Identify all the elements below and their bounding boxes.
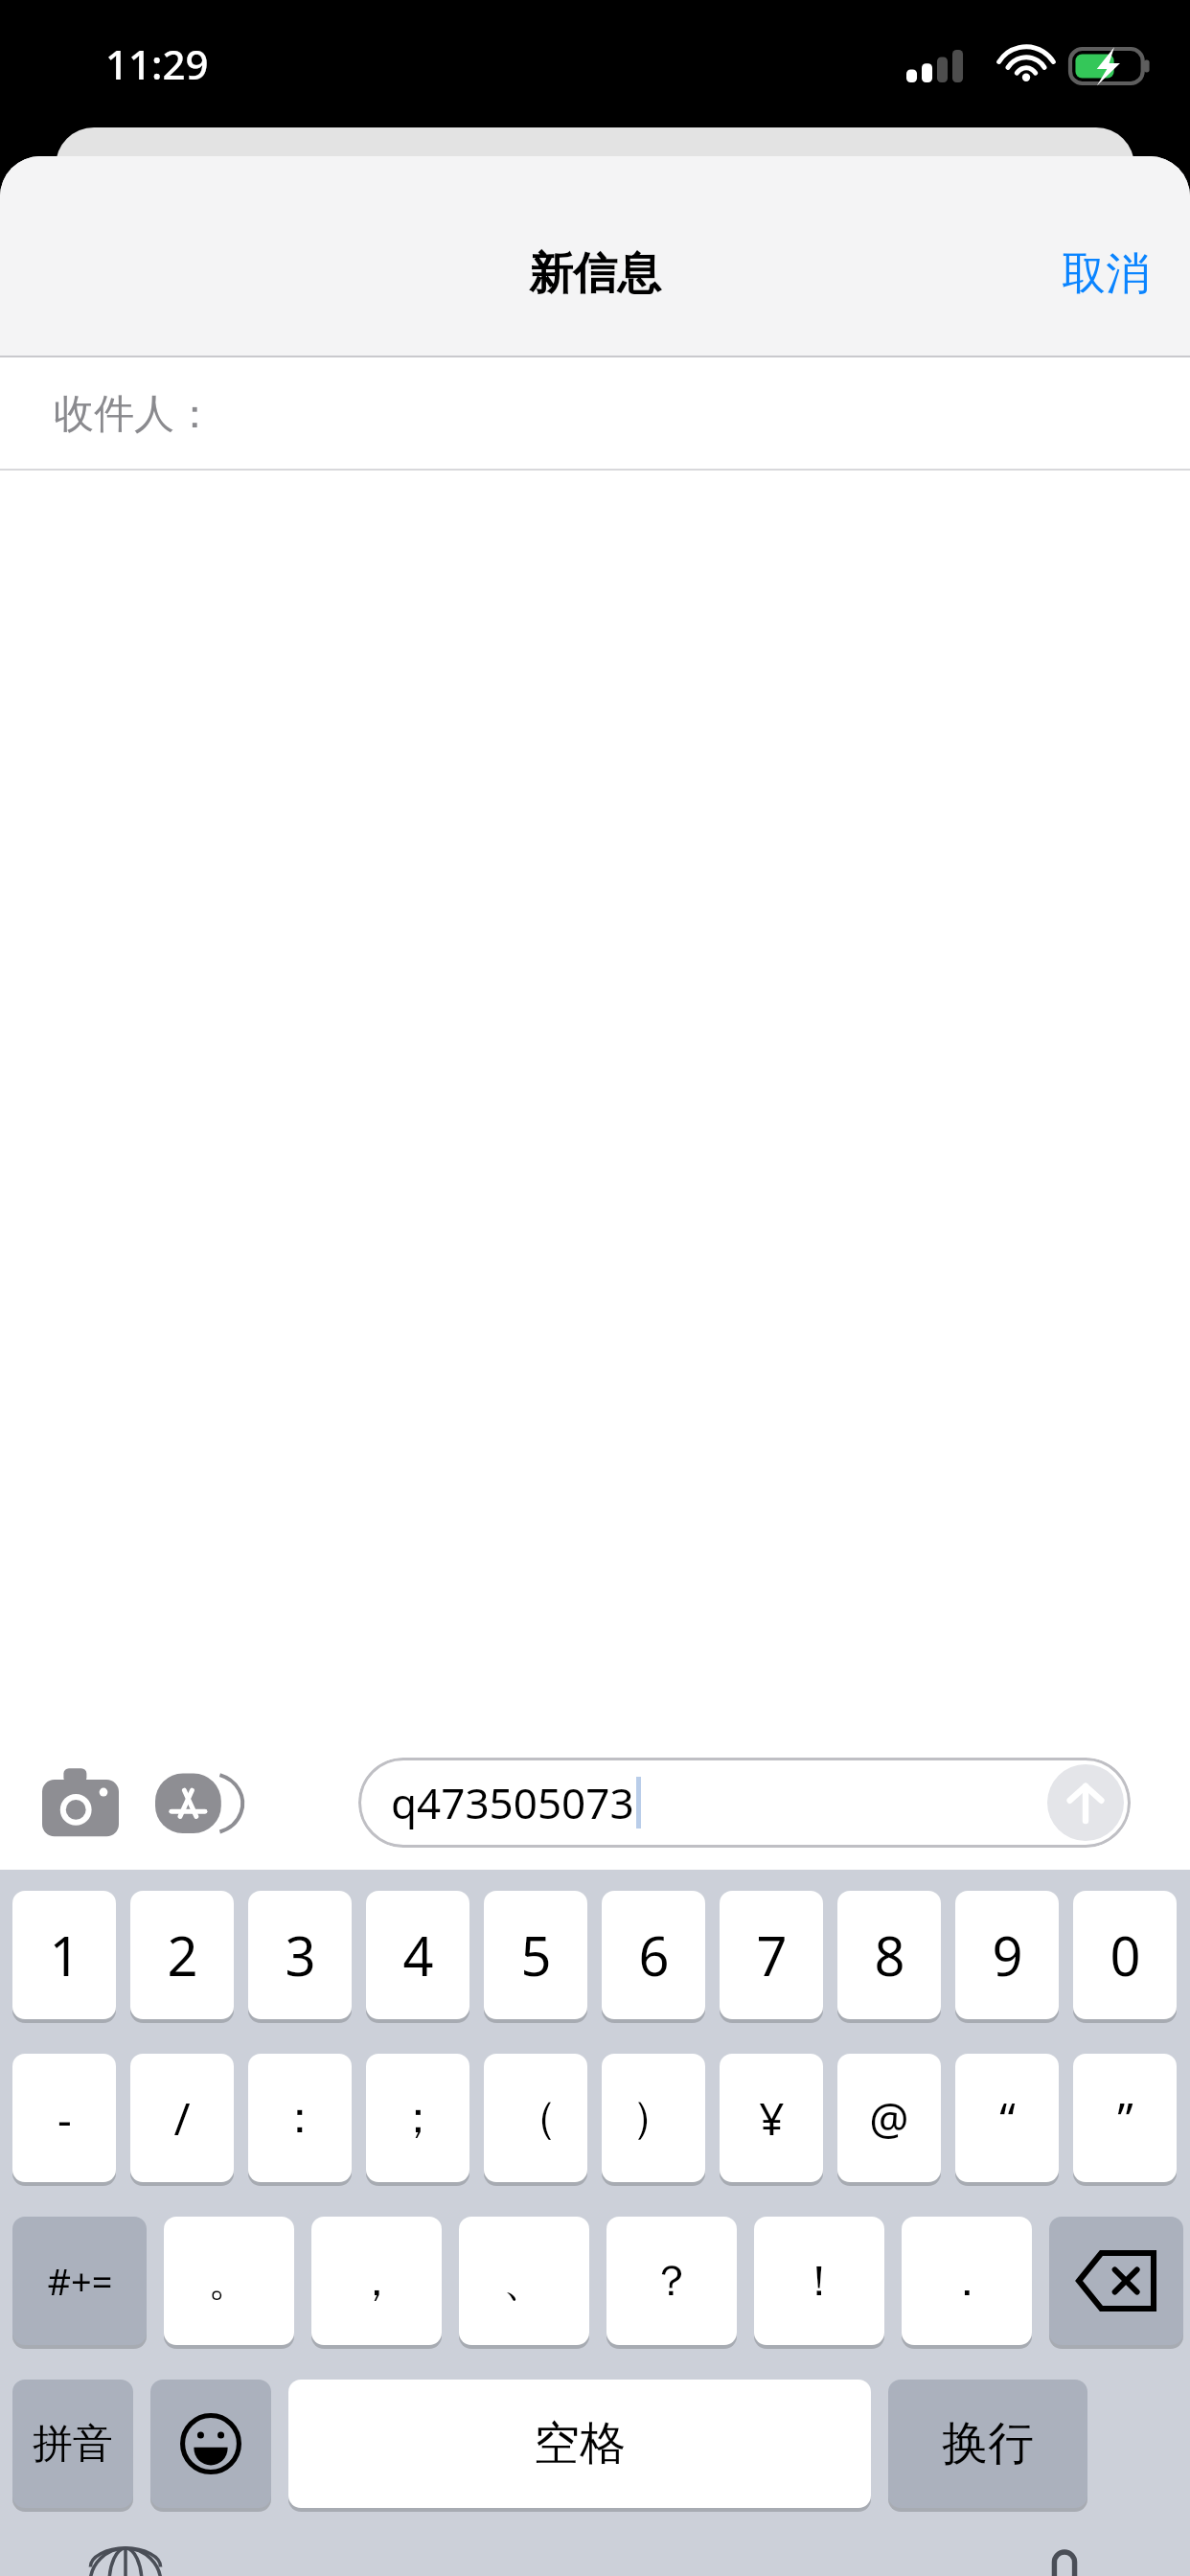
staticText: 拼音 [33,2419,113,2470]
button[interactable]: 空格 [288,2380,871,2508]
button[interactable]: 取消 [1021,231,1190,317]
staticText: #+= [47,2256,113,2306]
staticText: 7 [756,1919,788,1991]
staticText: 换行 [942,2415,1034,2472]
staticText: 6 [638,1919,670,1991]
button[interactable]: 。 [164,2217,294,2345]
staticText: 5 [520,1919,552,1991]
staticText: ； [396,2090,440,2146]
staticText: ： [278,2090,322,2146]
button[interactable]: 2 [130,1891,234,2019]
button[interactable]: - [12,2054,116,2182]
staticText: ！ [798,2255,840,2308]
staticText: ． [946,2255,988,2308]
staticText: 11:29 [105,36,209,91]
button[interactable]: / [130,2054,234,2182]
button[interactable]: 8 [837,1891,941,2019]
button[interactable]: 拼音 [12,2380,133,2508]
button[interactable]: q473505073 [358,1758,1131,1848]
staticText: ？ [651,2255,693,2308]
staticText: 空格 [534,2415,626,2472]
button[interactable]: ） [602,2054,705,2182]
button[interactable]: 5 [484,1891,587,2019]
staticText: “ [999,2088,1016,2149]
button[interactable]: ． [902,2217,1032,2345]
button[interactable]: ？ [606,2217,737,2345]
staticText: ” [1117,2088,1133,2149]
staticText: 取消 [1062,246,1150,302]
button[interactable]: Emoji [150,2380,271,2508]
staticText: 、 [503,2255,545,2308]
staticText: （ [514,2090,558,2146]
button[interactable]: 换行 [888,2380,1087,2508]
staticText: 3 [285,1919,316,1991]
button[interactable]: ， [311,2217,442,2345]
button[interactable]: ； [366,2054,469,2182]
staticText: 新信息 [529,246,661,302]
staticText: 1 [49,1919,80,1991]
button[interactable]: ： [248,2054,352,2182]
button[interactable]: 收件人： [0,357,1190,471]
button[interactable]: 7 [720,1891,823,2019]
staticText: 4 [402,1919,434,1991]
button[interactable]: 4 [366,1891,469,2019]
staticText: 2 [167,1919,198,1991]
button[interactable]: @ [837,2054,941,2182]
button[interactable]: Apps [155,1764,232,1841]
staticText: 。 [208,2255,250,2308]
staticText: - [57,2088,72,2149]
staticText: / [173,2088,191,2149]
staticText: ¥ [759,2088,785,2149]
staticText: 8 [874,1919,905,1991]
button[interactable]: （ [484,2054,587,2182]
button[interactable]: 0 [1073,1891,1177,2019]
button[interactable]: 1 [12,1891,116,2019]
staticText: 收件人： [54,389,215,440]
button[interactable]: 3 [248,1891,352,2019]
button[interactable]: #+= [12,2217,147,2345]
button[interactable]: Switch keyboard [84,2542,167,2576]
staticText: 0 [1110,1919,1141,1991]
staticText: @ [869,2088,909,2149]
button[interactable]: ¥ [720,2054,823,2182]
button[interactable]: Camera [42,1764,119,1841]
button[interactable]: 9 [955,1891,1059,2019]
button[interactable]: “ [955,2054,1059,2182]
button[interactable]: 、 [459,2217,589,2345]
button[interactable]: ” [1073,2054,1177,2182]
staticText: ， [355,2255,398,2308]
staticText: ） [631,2090,675,2146]
staticText: 9 [992,1919,1023,1991]
button[interactable]: ！ [754,2217,884,2345]
button[interactable]: Backspace [1049,2217,1183,2345]
button[interactable]: 6 [602,1891,705,2019]
button[interactable]: Send [1047,1764,1124,1841]
staticText: q473505073 [391,1774,634,1831]
button[interactable]: Dictation [1023,2542,1106,2576]
